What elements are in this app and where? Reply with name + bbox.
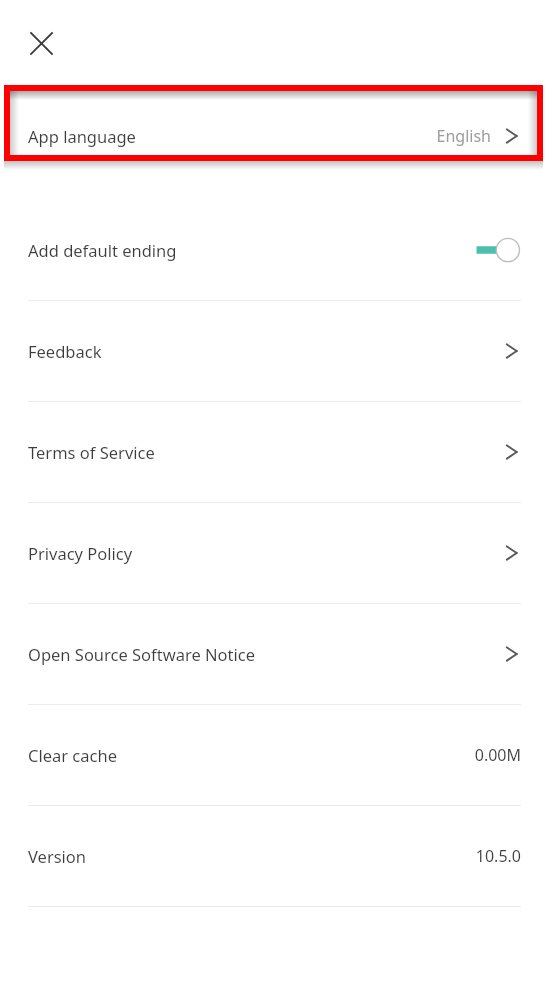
staticText: Privacy Policy (28, 542, 133, 564)
staticText: Clear cache (28, 744, 117, 766)
button[interactable]: Close (18, 20, 64, 66)
button[interactable]: Clear cache (0, 705, 550, 805)
button[interactable]: Terms of Service (0, 402, 550, 502)
button[interactable]: App language (0, 86, 550, 186)
staticText: App language (28, 125, 136, 147)
button[interactable]: Version (0, 806, 550, 906)
staticText: 10.5.0 (475, 845, 521, 867)
button[interactable]: Open Source Software Notice (0, 604, 550, 704)
button[interactable]: Privacy Policy (0, 503, 550, 603)
button[interactable]: Feedback (0, 301, 550, 401)
staticText: English (436, 125, 491, 147)
staticText: Terms of Service (28, 441, 155, 463)
button[interactable]: Add default ending toggle (475, 235, 521, 265)
staticText: Open Source Software Notice (28, 643, 256, 665)
staticText: Feedback (28, 340, 102, 362)
staticText: Add default ending (28, 239, 177, 261)
staticText: Version (28, 845, 87, 867)
button[interactable]: Add default ending (0, 200, 550, 300)
staticText: 0.00M (474, 744, 521, 766)
